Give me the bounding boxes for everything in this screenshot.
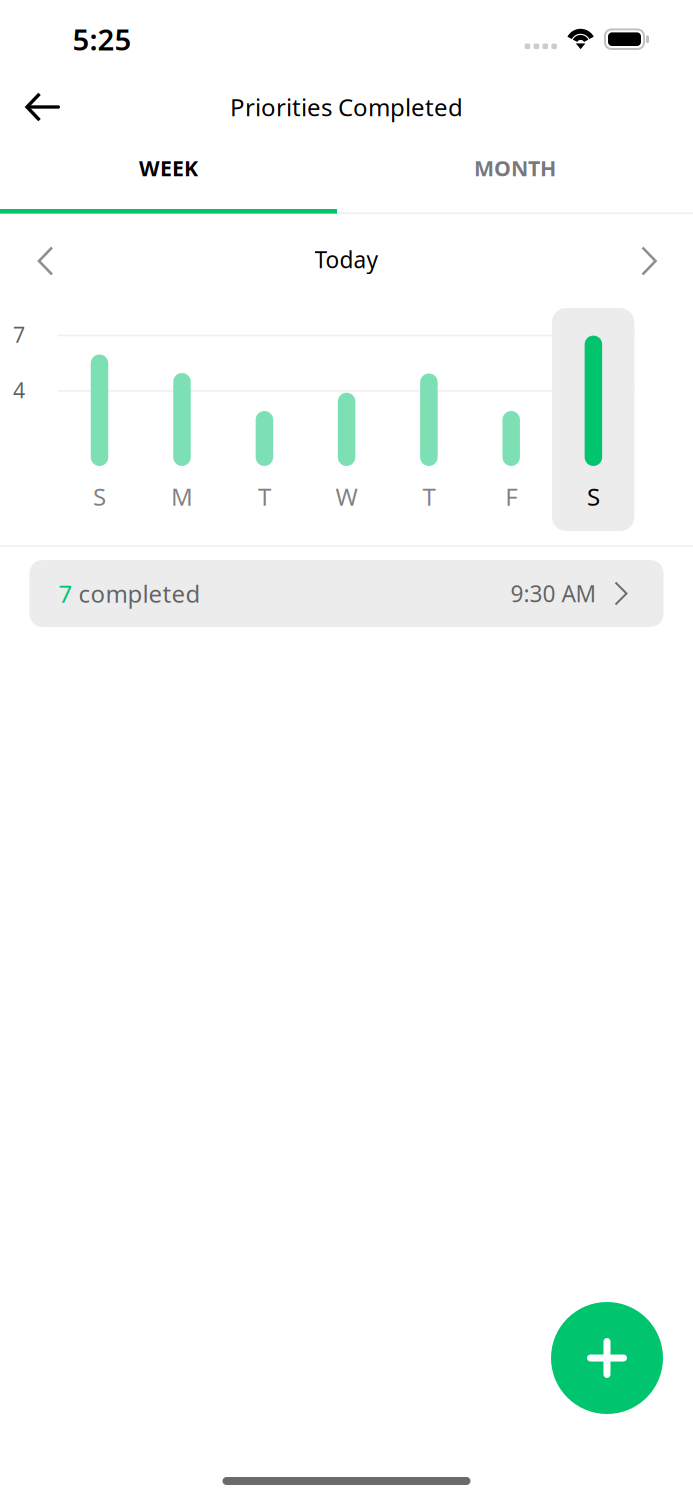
staticText: MONTH (474, 154, 556, 182)
button[interactable]: WEEK (0, 136, 337, 200)
button[interactable]: MONTH (337, 136, 693, 200)
button[interactable]: 7 completed, 9:30 AM (29, 560, 663, 627)
staticText: 9:30 AM (510, 578, 596, 608)
staticText: 7 (58, 578, 72, 609)
staticText: WEEK (139, 154, 198, 182)
staticText: 4 (13, 376, 25, 404)
staticText: T (258, 481, 271, 512)
staticText: T (422, 481, 435, 512)
staticText: S (93, 481, 106, 512)
staticText: F (505, 481, 517, 512)
button[interactable]: Add priority (551, 1302, 663, 1414)
button[interactable]: Back (9, 75, 77, 139)
staticText: 5:25 (72, 19, 131, 58)
staticText: M (171, 481, 193, 512)
button[interactable]: Next week (620, 232, 678, 290)
staticText: 7 (13, 320, 25, 349)
staticText: Today (314, 244, 378, 274)
staticText: W (336, 481, 358, 512)
button[interactable]: Previous week (16, 232, 74, 290)
staticText: Priorities Completed (230, 91, 463, 123)
staticText: completed (72, 578, 200, 609)
staticText: S (587, 481, 600, 512)
